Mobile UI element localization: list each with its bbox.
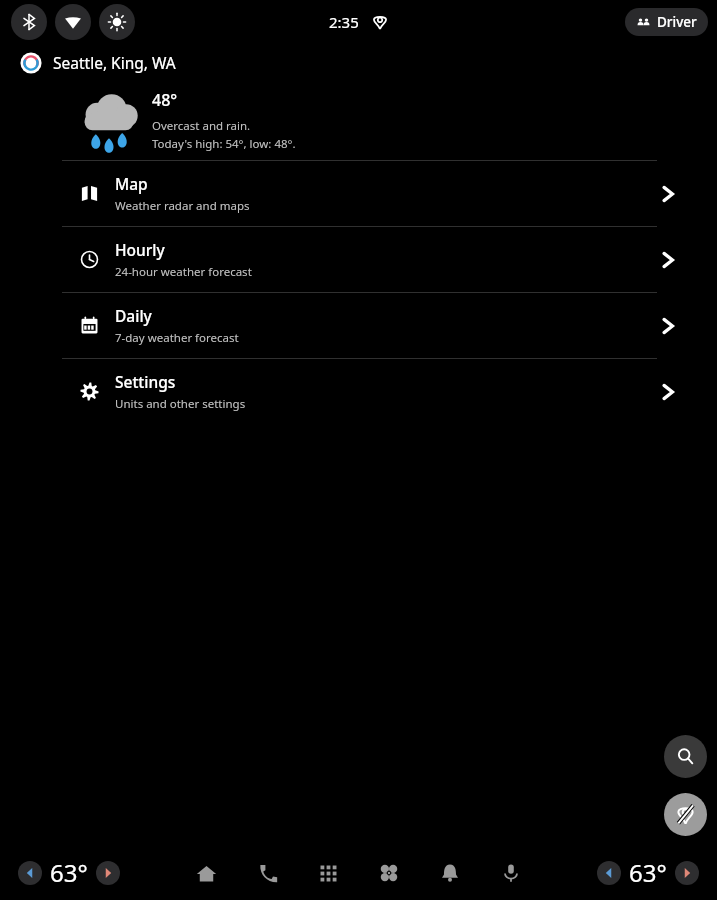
staticText: Driver: [657, 13, 697, 31]
staticText: Weather radar and maps: [115, 198, 250, 214]
staticText: Today's high: 54°, low: 48°.: [152, 136, 296, 152]
button[interactable]: Notifications: [426, 849, 474, 897]
button[interactable]: Apps: [304, 849, 352, 897]
staticText: Settings: [115, 371, 176, 392]
button[interactable]: Settings: [0, 359, 717, 424]
staticText: 48°: [152, 89, 178, 111]
staticText: 24-hour weather forecast: [115, 264, 252, 280]
staticText: 2:35: [329, 12, 359, 32]
button[interactable]: Driver: [625, 8, 708, 36]
button[interactable]: Phone: [243, 849, 291, 897]
button[interactable]: Location off: [664, 793, 707, 836]
button[interactable]: Seattle, King, WA: [0, 44, 717, 81]
staticText: Daily: [115, 305, 152, 326]
other: Location active: [372, 14, 388, 30]
button[interactable]: Increase temperature: [96, 861, 120, 885]
staticText: Hourly: [115, 239, 165, 260]
button[interactable]: Hourly: [0, 227, 717, 292]
staticText: Overcast and rain.: [152, 118, 251, 134]
button[interactable]: Current conditions: [0, 81, 717, 160]
button[interactable]: Daily: [0, 293, 717, 358]
staticText: Units and other settings: [115, 396, 246, 412]
button[interactable]: Search: [664, 735, 707, 778]
button[interactable]: Wi-Fi: [55, 4, 91, 40]
button[interactable]: Map: [0, 161, 717, 226]
staticText: 63°: [629, 856, 667, 889]
staticText: Map: [115, 173, 148, 194]
button[interactable]: Home: [182, 849, 230, 897]
button[interactable]: Decrease temperature: [597, 861, 621, 885]
button[interactable]: Assistant: [487, 849, 535, 897]
staticText: 63°: [50, 856, 88, 889]
button[interactable]: Decrease temperature: [18, 861, 42, 885]
button[interactable]: Bluetooth: [11, 4, 47, 40]
button[interactable]: Increase temperature: [675, 861, 699, 885]
staticText: Seattle, King, WA: [53, 52, 176, 73]
staticText: 7-day weather forecast: [115, 330, 239, 346]
button[interactable]: Climate: [365, 849, 413, 897]
button[interactable]: Brightness: [99, 4, 135, 40]
